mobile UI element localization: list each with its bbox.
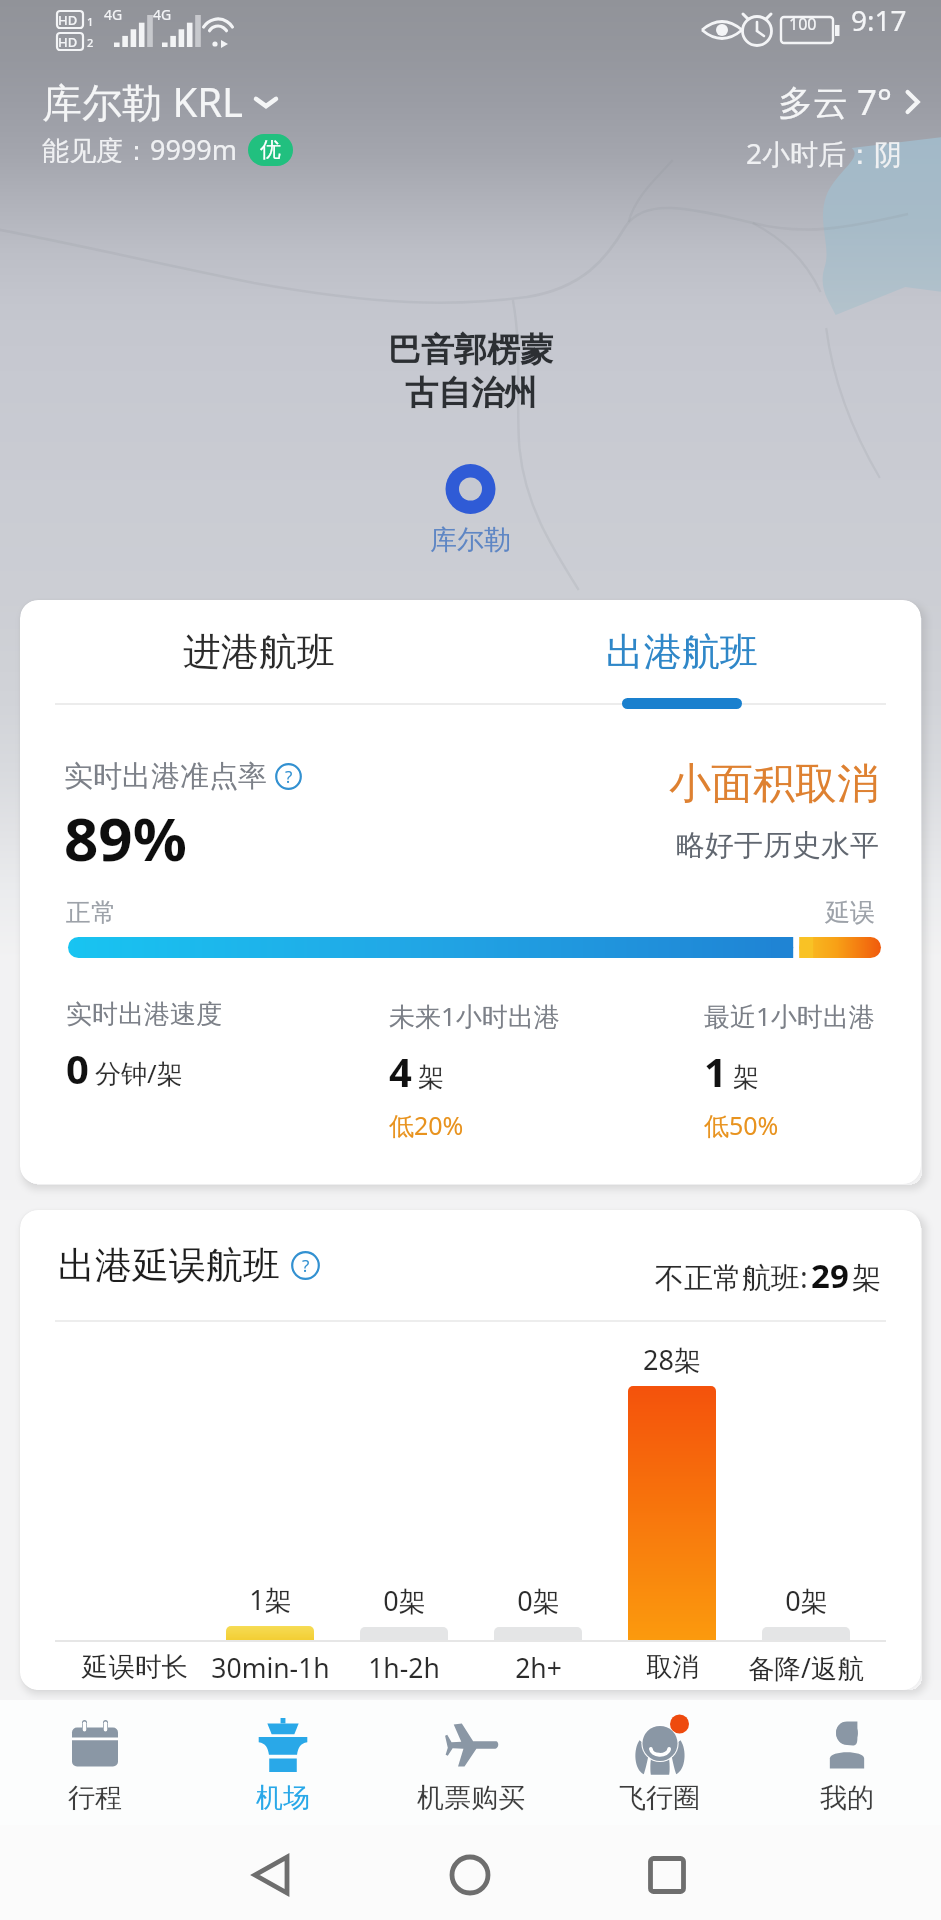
staticText: 未来1小时出港: [389, 998, 560, 1034]
staticText: 古自治州: [405, 372, 537, 414]
staticText: 9:17: [851, 1, 907, 39]
staticText: 低20%: [389, 1108, 464, 1142]
staticText: 4G: [153, 5, 172, 24]
staticText: 飞行圈: [619, 1781, 700, 1815]
button[interactable]: 出港航班: [466, 600, 911, 713]
staticText: 取消: [646, 1650, 699, 1683]
staticText: 我的: [820, 1781, 874, 1815]
staticText: 2h+: [515, 1650, 562, 1686]
button[interactable]: 帮助说明 Help: [291, 1251, 320, 1280]
button[interactable]: 库尔勒 KRL: [42, 74, 293, 168]
staticText: ?: [302, 1254, 310, 1277]
staticText: 0架: [517, 1582, 560, 1619]
staticText: 最近1小时出港: [704, 998, 875, 1034]
staticText: 小面积取消: [669, 758, 879, 811]
button[interactable]: 帮助说明 Help: [275, 763, 302, 790]
staticText: 低50%: [704, 1108, 779, 1142]
staticText: 架: [733, 1061, 759, 1094]
staticText: 89%: [64, 797, 187, 873]
staticText: 100: [789, 13, 817, 35]
staticText: 2: [87, 35, 94, 50]
staticText: ?: [285, 765, 293, 788]
button[interactable]: Home: [424, 1825, 516, 1920]
staticText: 0架: [383, 1582, 426, 1619]
staticText: HD: [58, 11, 78, 29]
staticText: 实时出港准点率: [64, 758, 267, 795]
staticText: 行程: [68, 1781, 122, 1815]
staticText: 进港航班: [183, 628, 335, 676]
button[interactable]: Recent apps: [621, 1825, 713, 1920]
staticText: 库尔勒: [430, 523, 511, 557]
staticText: 不正常航班:: [655, 1257, 808, 1297]
staticText: 1: [704, 1044, 727, 1098]
staticText: 优: [260, 137, 281, 163]
staticText: 机票购买: [417, 1781, 525, 1815]
button[interactable]: 行程: [0, 1700, 189, 1825]
staticText: 架: [418, 1061, 444, 1094]
staticText: 1架: [249, 1581, 292, 1618]
button[interactable]: 我的: [753, 1700, 941, 1825]
button[interactable]: 多云 7°: [768, 78, 925, 172]
staticText: 出港航班: [606, 628, 758, 676]
staticText: 1: [87, 14, 94, 29]
button[interactable]: 进港航班: [20, 600, 465, 713]
staticText: 4: [389, 1044, 412, 1098]
staticText: 备降/返航: [748, 1650, 864, 1686]
staticText: 多云 7°: [778, 78, 893, 126]
staticText: 架: [852, 1260, 881, 1297]
staticText: HD: [58, 33, 78, 51]
staticText: 0: [66, 1041, 89, 1095]
staticText: 28架: [643, 1341, 701, 1378]
staticText: 29: [811, 1253, 849, 1298]
staticText: 略好于历史水平: [676, 827, 879, 864]
staticText: 机场: [256, 1781, 310, 1815]
staticText: 4G: [104, 5, 123, 24]
staticText: 2小时后：阴: [746, 134, 903, 172]
button[interactable]: 机场: [189, 1700, 377, 1825]
staticText: 库尔勒 KRL: [42, 74, 243, 129]
staticText: 0架: [785, 1582, 828, 1619]
button[interactable]: 飞行圈: [565, 1700, 753, 1825]
staticText: 30min-1h: [211, 1650, 330, 1686]
staticText: 正常: [66, 897, 116, 928]
staticText: 分钟/架: [95, 1055, 183, 1091]
button[interactable]: 机票购买: [377, 1700, 565, 1825]
staticText: 巴音郭楞蒙: [388, 329, 553, 371]
staticText: 能见度：9999m: [42, 131, 238, 168]
staticText: 出港延误航班: [58, 1242, 280, 1289]
staticText: 实时出港速度: [66, 998, 222, 1031]
staticText: 延误: [825, 897, 875, 928]
button[interactable]: Back: [226, 1825, 318, 1920]
staticText: 1h-2h: [368, 1650, 440, 1686]
staticText: 延误时长: [82, 1650, 188, 1683]
